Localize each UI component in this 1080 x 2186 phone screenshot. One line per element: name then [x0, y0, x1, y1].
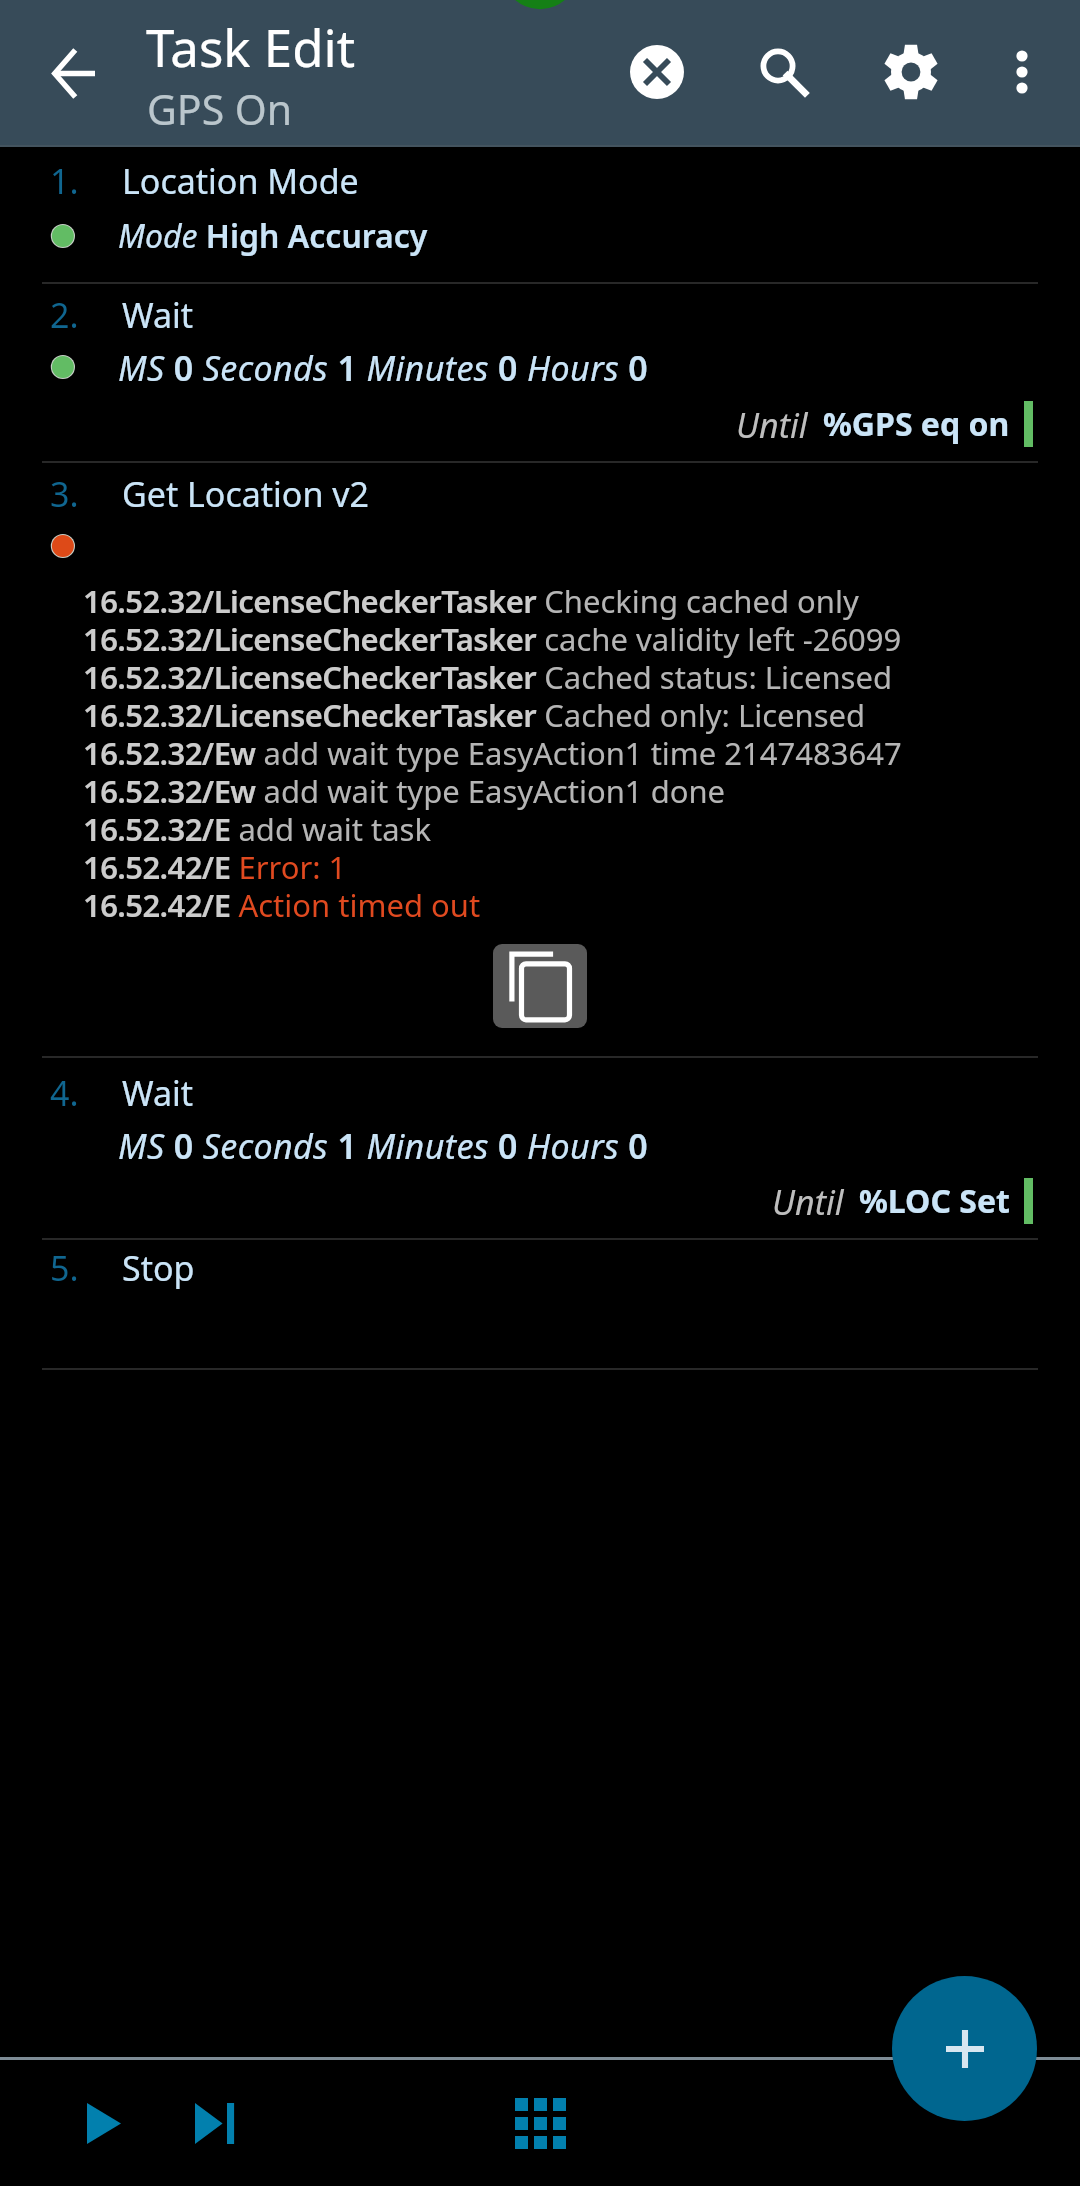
staticText: 16.52.42/E Error: 1: [83, 846, 347, 888]
staticText: Until: [772, 1179, 844, 1225]
staticText: Task Edit: [146, 12, 356, 81]
staticText: 3.: [50, 471, 79, 517]
staticText: 1.: [50, 158, 79, 204]
staticText: 16.52.32/LicenseCheckerTasker Cached sta…: [83, 656, 892, 698]
staticText: 5.: [50, 1245, 79, 1291]
button[interactable]: Search: [718, 12, 838, 132]
staticText: 16.52.42/E Action timed out: [83, 884, 481, 926]
button[interactable]: 1.: [0, 146, 1080, 282]
staticText: MS 0 Seconds 1 Minutes 0 Hours 0: [118, 345, 649, 391]
button[interactable]: 5.: [0, 1239, 1080, 1367]
button[interactable]: Step: [164, 2073, 264, 2173]
staticText: %GPS eq on: [823, 402, 1010, 446]
staticText: 2.: [50, 292, 79, 338]
staticText: 16.52.32/Ew add wait type EasyAction1 ti…: [83, 732, 902, 774]
button[interactable]: Back: [13, 13, 133, 133]
staticText: %LOC Set: [859, 1179, 1010, 1223]
button[interactable]: Settings: [851, 12, 971, 132]
staticText: Mode High Accuracy: [118, 214, 428, 258]
staticText: 16.52.32/LicenseCheckerTasker cache vali…: [83, 618, 902, 660]
staticText: 16.52.32/LicenseCheckerTasker Checking c…: [83, 580, 859, 622]
button[interactable]: 3.: [0, 462, 1080, 1055]
staticText: Until: [736, 402, 808, 448]
button[interactable]: Cancel: [597, 12, 717, 132]
staticText: Location Mode: [122, 158, 359, 204]
staticText: Stop: [122, 1245, 195, 1291]
staticText: 16.52.32/E add wait task: [83, 808, 432, 850]
staticText: 4.: [50, 1070, 79, 1116]
button[interactable]: More options: [962, 12, 1080, 132]
button[interactable]: 4.: [0, 1057, 1080, 1237]
button[interactable]: Add action: [892, 1976, 1037, 2121]
staticText: Wait: [122, 292, 194, 338]
staticText: MS 0 Seconds 1 Minutes 0 Hours 0: [118, 1123, 649, 1169]
button[interactable]: Run task: [54, 2073, 154, 2173]
button[interactable]: Action categories: [490, 2073, 590, 2173]
staticText: Wait: [122, 1070, 194, 1116]
staticText: 16.52.32/LicenseCheckerTasker Cached onl…: [83, 694, 866, 736]
staticText: GPS On: [147, 81, 293, 137]
button[interactable]: 2.: [0, 283, 1080, 460]
button[interactable]: Copy log: [493, 944, 587, 1028]
staticText: Get Location v2: [122, 471, 370, 517]
staticText: 16.52.32/Ew add wait type EasyAction1 do…: [83, 770, 726, 812]
